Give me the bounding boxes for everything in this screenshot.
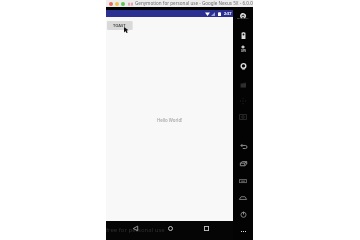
staticText: 2:37: [224, 11, 232, 16]
button[interactable]: Recent apps: [200, 222, 212, 234]
button[interactable]: Screenshot: [237, 111, 249, 123]
button[interactable]: TOAST: [107, 21, 132, 30]
button[interactable]: Home: [164, 222, 176, 234]
button[interactable]: Camera: [237, 60, 249, 72]
button[interactable]: More: [240, 229, 247, 233]
button[interactable]: Power: [237, 208, 249, 220]
button[interactable]: Maximise: [121, 2, 125, 6]
button[interactable]: Close: [109, 2, 113, 6]
button[interactable]: Rotate: [237, 140, 249, 152]
staticText: Genymotion for personal use - Google Nex…: [135, 0, 253, 7]
staticText: free for personal use: [106, 226, 165, 234]
button[interactable]: Volume: [237, 192, 249, 204]
button[interactable]: Minimise: [115, 2, 119, 6]
button[interactable]: Keyboard: [237, 175, 249, 187]
staticText: Hello World!: [157, 117, 183, 123]
button[interactable]: GPS: [237, 41, 249, 53]
button[interactable]: Genymotion: [237, 10, 249, 22]
staticText: GENYMOTION: [237, 17, 249, 19]
button[interactable]: Screencast: [237, 78, 249, 90]
staticText: TOAST: [113, 23, 126, 28]
button[interactable]: Back: [129, 222, 141, 234]
staticText: GPS: [241, 49, 246, 53]
button[interactable]: Multi touch: [237, 95, 249, 107]
button[interactable]: Open GApps: [237, 157, 249, 169]
button[interactable]: Battery: [237, 29, 249, 41]
